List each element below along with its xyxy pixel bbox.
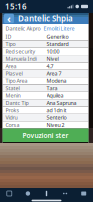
button[interactable]: Povuzioni ster xyxy=(2,128,88,142)
staticText: Statel xyxy=(5,85,19,92)
button[interactable]: Tool 4 xyxy=(56,188,74,199)
staticText: Povuzioni ster xyxy=(22,131,68,140)
staticText: Red security xyxy=(5,48,35,55)
staticText: Corsa xyxy=(5,121,19,128)
staticText: ID xyxy=(5,33,11,40)
staticText: Menin xyxy=(5,92,20,99)
staticText: Area xyxy=(5,62,16,70)
staticText: Niveu 2 xyxy=(46,121,64,128)
staticText: Dantelic Shpia xyxy=(18,13,73,24)
staticText: Ana Sapruna xyxy=(46,99,76,106)
staticText: 15:16 xyxy=(5,1,27,12)
staticText: Standard xyxy=(46,40,68,48)
staticText: Vidru xyxy=(5,114,17,121)
staticText: Proks xyxy=(5,107,19,114)
staticText: ad 1dn it xyxy=(46,107,66,114)
button[interactable]: Tool 3 xyxy=(37,188,56,199)
staticText: 4,7 xyxy=(46,62,53,70)
button[interactable]: Tool 1 xyxy=(0,188,19,199)
button[interactable]: Emoliti Litere xyxy=(43,25,74,32)
button[interactable]: Back xyxy=(4,14,14,23)
staticText: Nivel xyxy=(46,55,58,62)
staticText: Modena xyxy=(46,77,66,84)
staticText: Dantc Tip xyxy=(5,99,28,106)
staticText: Dantelic Akpro xyxy=(5,25,40,32)
button[interactable]: Tool 2 xyxy=(19,188,37,199)
staticText: Area 7 xyxy=(46,70,61,77)
staticText: Aquilea xyxy=(46,92,63,99)
staticText: Tipo xyxy=(5,40,15,48)
staticText: Manuela Indi xyxy=(5,55,36,62)
staticText: Tipo Area xyxy=(5,77,27,84)
staticText: Emoliti Litere xyxy=(43,25,74,32)
staticText: Plasvel xyxy=(5,70,22,77)
staticText: 10:00 xyxy=(46,48,59,55)
staticText: ‹ xyxy=(7,11,11,26)
button[interactable]: Tool 5 xyxy=(74,188,93,199)
button[interactable]: Dantelic Akpro xyxy=(5,25,40,32)
staticText: Tara xyxy=(46,85,57,92)
staticText: Senterlo xyxy=(46,114,66,121)
staticText: Generiko xyxy=(46,33,68,40)
